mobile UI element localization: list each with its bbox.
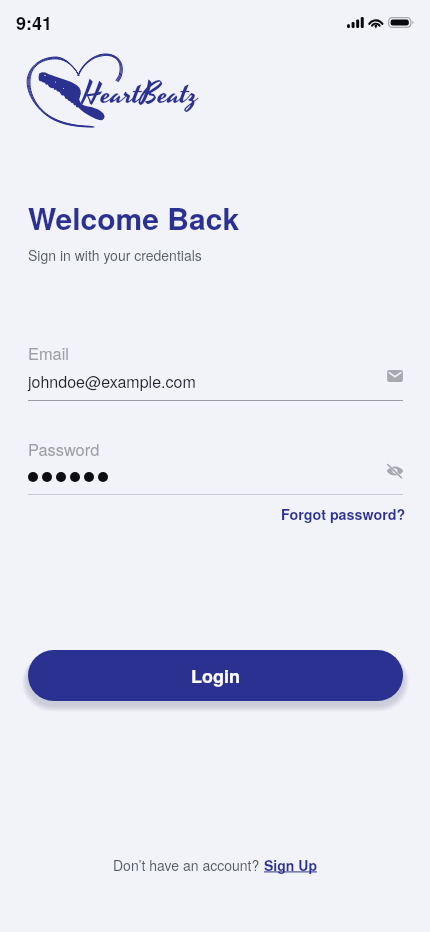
staticText: Forgot password?	[281, 504, 406, 524]
button[interactable]: Show password	[382, 459, 408, 483]
button[interactable]: Login	[28, 650, 403, 701]
button[interactable]: Sign Up	[264, 855, 317, 875]
staticText: Sign in with your credentials	[28, 245, 202, 265]
staticText: HeartBeatz	[83, 73, 199, 117]
staticText: 9:41	[16, 10, 53, 36]
staticText: johndoe@example.com	[28, 370, 196, 393]
staticText: Password	[28, 437, 100, 460]
button[interactable]: Email	[382, 364, 408, 388]
staticText: Email	[28, 341, 69, 364]
staticText: Sign Up	[264, 855, 317, 875]
staticText: Login	[191, 663, 240, 689]
staticText: Welcome Back	[28, 196, 240, 239]
staticText: Don’t have an account?	[113, 855, 264, 875]
button[interactable]: Forgot password?	[281, 504, 406, 524]
